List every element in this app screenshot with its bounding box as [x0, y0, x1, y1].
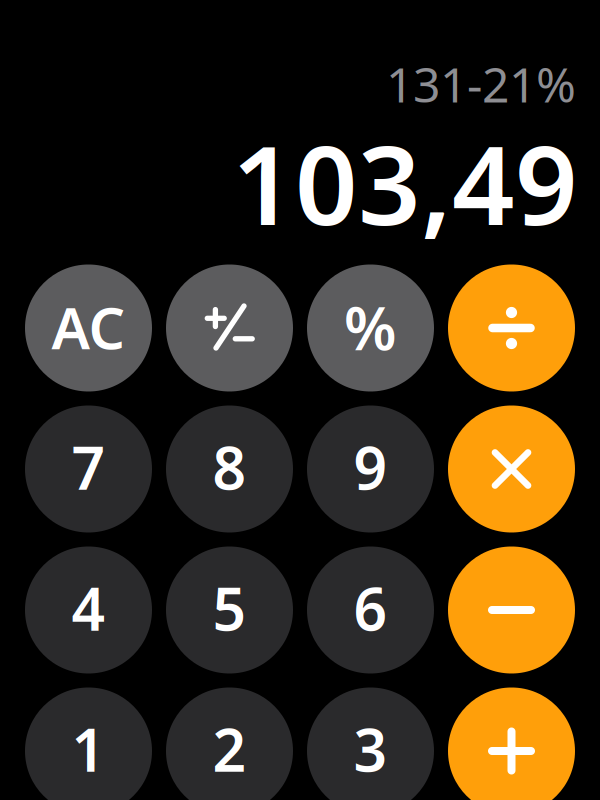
staticText: 5: [212, 569, 246, 647]
button[interactable]: Minus: [448, 546, 575, 673]
button[interactable]: %: [307, 264, 434, 391]
button[interactable]: Multiply: [448, 405, 575, 532]
staticText: 2: [212, 710, 246, 788]
staticText: AC: [51, 289, 125, 365]
button[interactable]: Divide: [448, 264, 575, 391]
staticText: 3: [353, 710, 387, 788]
staticText: 6: [353, 569, 387, 647]
button[interactable]: 6: [307, 546, 434, 673]
staticText: 8: [212, 428, 246, 506]
button[interactable]: Plus: [448, 687, 575, 800]
button[interactable]: Plus Minus: [166, 264, 293, 391]
button[interactable]: 8: [166, 405, 293, 532]
staticText: 1: [71, 710, 105, 788]
staticText: 103,49: [232, 110, 578, 255]
button[interactable]: 1: [25, 687, 152, 800]
staticText: 7: [71, 428, 105, 506]
button[interactable]: 9: [307, 405, 434, 532]
button[interactable]: 2: [166, 687, 293, 800]
staticText: 4: [71, 569, 105, 647]
button[interactable]: AC: [25, 264, 152, 391]
staticText: 131-21%: [386, 52, 576, 116]
staticText: %: [344, 287, 397, 367]
button[interactable]: 3: [307, 687, 434, 800]
button[interactable]: 5: [166, 546, 293, 673]
button[interactable]: 4: [25, 546, 152, 673]
button[interactable]: 7: [25, 405, 152, 532]
staticText: 9: [353, 428, 387, 506]
